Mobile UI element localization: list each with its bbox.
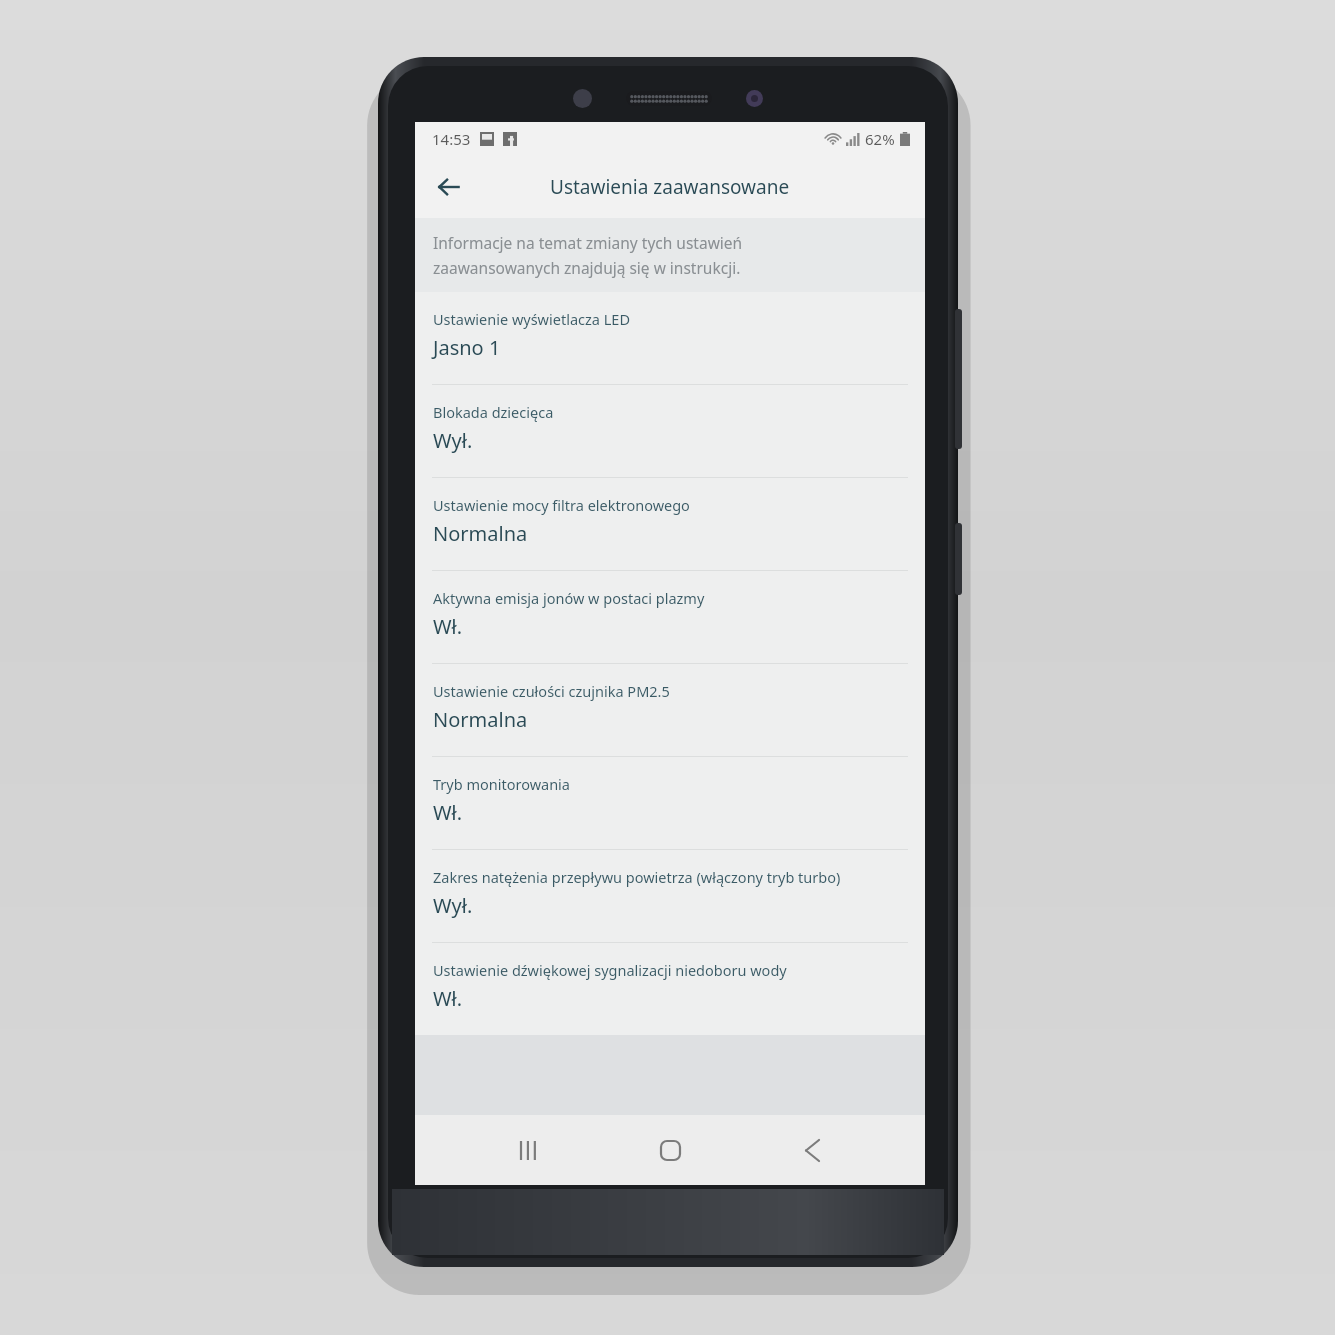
- staticText: Jasno 1: [433, 334, 501, 361]
- staticText: Wył.: [433, 427, 473, 454]
- staticText: 62%: [865, 129, 895, 149]
- staticText: Tryb monitorowania: [433, 774, 570, 794]
- staticText: 14:53: [432, 129, 471, 149]
- button[interactable]: Zakres natężenia przepływu powietrza (wł…: [415, 850, 925, 942]
- staticText: Ustawienie wyświetlacza LED: [433, 309, 630, 329]
- staticText: Zakres natężenia przepływu powietrza (wł…: [433, 867, 841, 887]
- button[interactable]: Wstecz: [425, 163, 473, 211]
- button[interactable]: Ustawienie czułości czujnika PM2.5: [415, 664, 925, 756]
- staticText: Wł.: [433, 985, 463, 1012]
- staticText: Ustawienie mocy filtra elektronowego: [433, 495, 690, 515]
- staticText: Ustawienie czułości czujnika PM2.5: [433, 681, 670, 701]
- staticText: Blokada dziecięca: [433, 402, 554, 422]
- button[interactable]: Ostatnie: [501, 1122, 557, 1178]
- staticText: Normalna: [433, 706, 528, 733]
- button[interactable]: Wstecz: [784, 1122, 840, 1178]
- staticText: Wył.: [433, 892, 473, 919]
- staticText: Ustawienia zaawansowane: [550, 174, 790, 200]
- button[interactable]: Tryb monitorowania: [415, 757, 925, 849]
- staticText: Normalna: [433, 520, 528, 547]
- staticText: Ustawienie dźwiękowej sygnalizacji niedo…: [433, 960, 787, 980]
- staticText: zaawansowanych znajdują się w instrukcji…: [433, 257, 741, 278]
- button[interactable]: Ekran główny: [642, 1122, 698, 1178]
- button[interactable]: Aktywna emisja jonów w postaci plazmy: [415, 571, 925, 663]
- button[interactable]: Ustawienie wyświetlacza LED: [415, 292, 925, 384]
- staticText: Wł.: [433, 613, 463, 640]
- staticText: Informacje na temat zmiany tych ustawień: [433, 232, 743, 253]
- button[interactable]: Blokada dziecięca: [415, 385, 925, 477]
- button[interactable]: Ustawienie mocy filtra elektronowego: [415, 478, 925, 570]
- button[interactable]: Ustawienie dźwiękowej sygnalizacji niedo…: [415, 943, 925, 1035]
- staticText: Wł.: [433, 799, 463, 826]
- staticText: Aktywna emisja jonów w postaci plazmy: [433, 588, 705, 608]
